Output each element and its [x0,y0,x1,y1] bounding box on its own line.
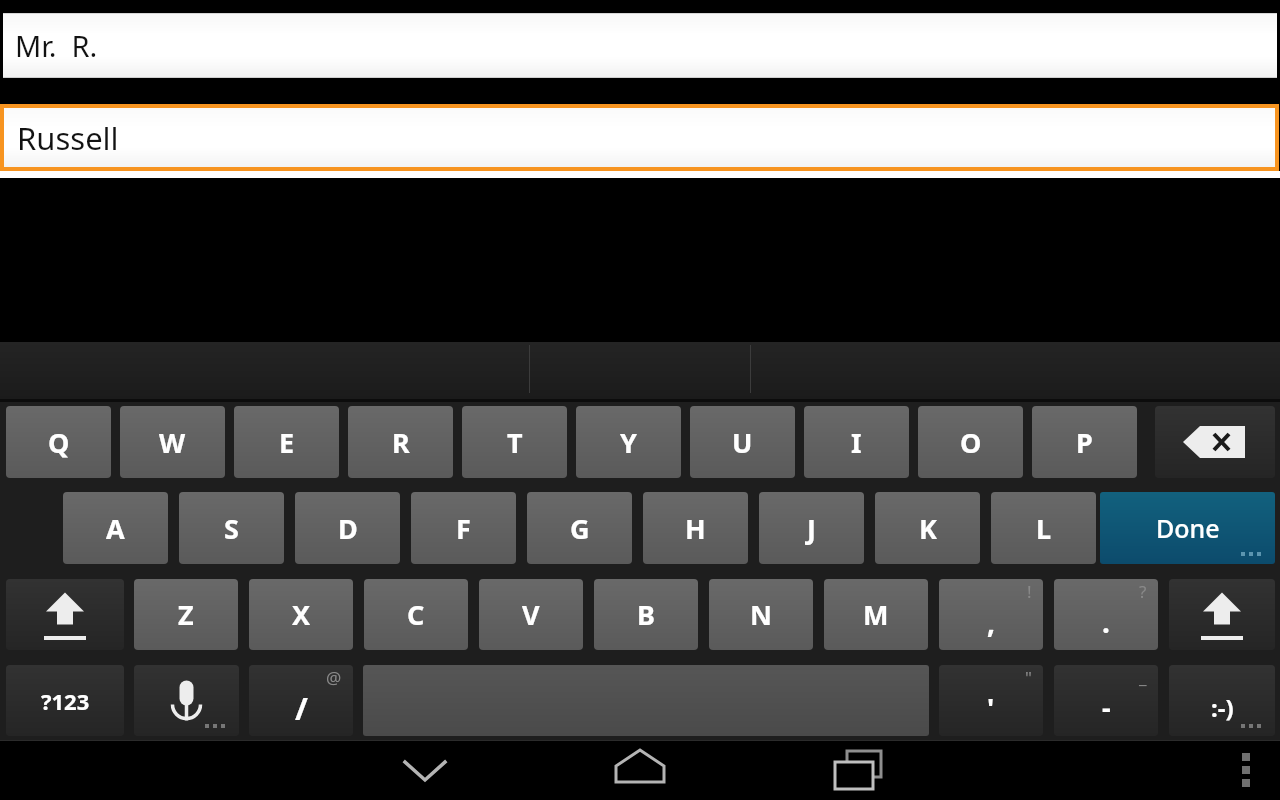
staticText: R [392,424,410,461]
button[interactable]: M [824,579,928,650]
button[interactable]: More options [1222,744,1270,796]
button[interactable]: C [364,579,468,650]
staticText: , [987,603,995,641]
button[interactable]: V [479,579,583,650]
staticText: G [570,510,590,547]
button[interactable]: X [249,579,353,650]
staticText: W [159,424,186,461]
button[interactable]: B [594,579,698,650]
button[interactable]: Space [363,665,929,736]
button[interactable]: " [939,665,1043,736]
button[interactable]: E [234,406,339,478]
button[interactable]: Mr. R. [3,13,1277,78]
button[interactable]: Voice input [134,665,239,736]
staticText: / [295,687,308,729]
button[interactable]: Backspace [1155,406,1275,478]
button[interactable]: H [643,492,748,564]
button[interactable]: Home [600,744,680,796]
button[interactable]: Done [1100,492,1275,564]
staticText: A [106,510,125,547]
staticText: ! [1027,580,1032,603]
staticText: - [1102,689,1111,726]
staticText: . [1102,603,1110,641]
button[interactable]: Shift [6,579,124,650]
button[interactable]: D [295,492,400,564]
staticText: F [456,510,471,547]
button[interactable]: Recent apps [817,744,897,796]
staticText: C [407,596,425,633]
staticText: Q [48,424,70,461]
staticText: N [750,596,772,633]
button[interactable]: K [875,492,980,564]
staticText: @ [326,666,342,689]
staticText: H [685,510,706,547]
staticText: D [338,510,358,547]
staticText: E [279,424,295,461]
button[interactable]: S [179,492,284,564]
button[interactable]: Shift [1169,579,1275,650]
button[interactable]: T [462,406,567,478]
staticText: S [224,510,239,547]
staticText: ' [987,689,995,726]
button[interactable]: N [709,579,813,650]
staticText: X [292,596,311,633]
button[interactable]: W [120,406,225,478]
staticText: Done [1156,511,1220,545]
button[interactable]: Hide keyboard [385,744,465,796]
staticText: ? [1139,580,1147,603]
button[interactable]: J [759,492,864,564]
staticText: I [851,424,862,461]
staticText: Z [178,596,194,633]
button[interactable]: @ [249,665,353,736]
button[interactable]: P [1032,406,1137,478]
button[interactable]: Z [134,579,238,650]
button[interactable]: ! [939,579,1043,650]
button[interactable]: ?123 [6,665,124,736]
staticText: J [807,510,816,547]
button[interactable]: O [918,406,1023,478]
staticText: V [522,596,540,633]
staticText: U [732,424,753,461]
button[interactable]: Russell [0,104,1279,171]
button[interactable]: ? [1054,579,1158,650]
staticText: ?123 [41,686,90,716]
button[interactable]: U [690,406,795,478]
button[interactable]: L [991,492,1096,564]
staticText: P [1076,424,1093,461]
staticText: Mr. R. [15,26,98,65]
staticText: B [637,596,655,633]
staticText: Russell [17,117,119,159]
staticText: L [1036,510,1052,547]
button[interactable]: F [411,492,516,564]
button[interactable]: R [348,406,453,478]
staticText: T [507,424,523,461]
staticText: Y [620,424,637,461]
staticText: K [919,510,937,547]
button[interactable]: :-) [1169,665,1275,736]
staticText: " [1025,666,1032,689]
button[interactable]: Q [6,406,111,478]
staticText: M [863,596,889,633]
button[interactable]: Y [576,406,681,478]
staticText: O [960,424,982,461]
button[interactable]: A [63,492,168,564]
button[interactable]: I [804,406,909,478]
staticText: _ [1139,666,1147,689]
staticText: :-) [1211,691,1234,724]
button[interactable]: _ [1054,665,1158,736]
button[interactable]: G [527,492,632,564]
